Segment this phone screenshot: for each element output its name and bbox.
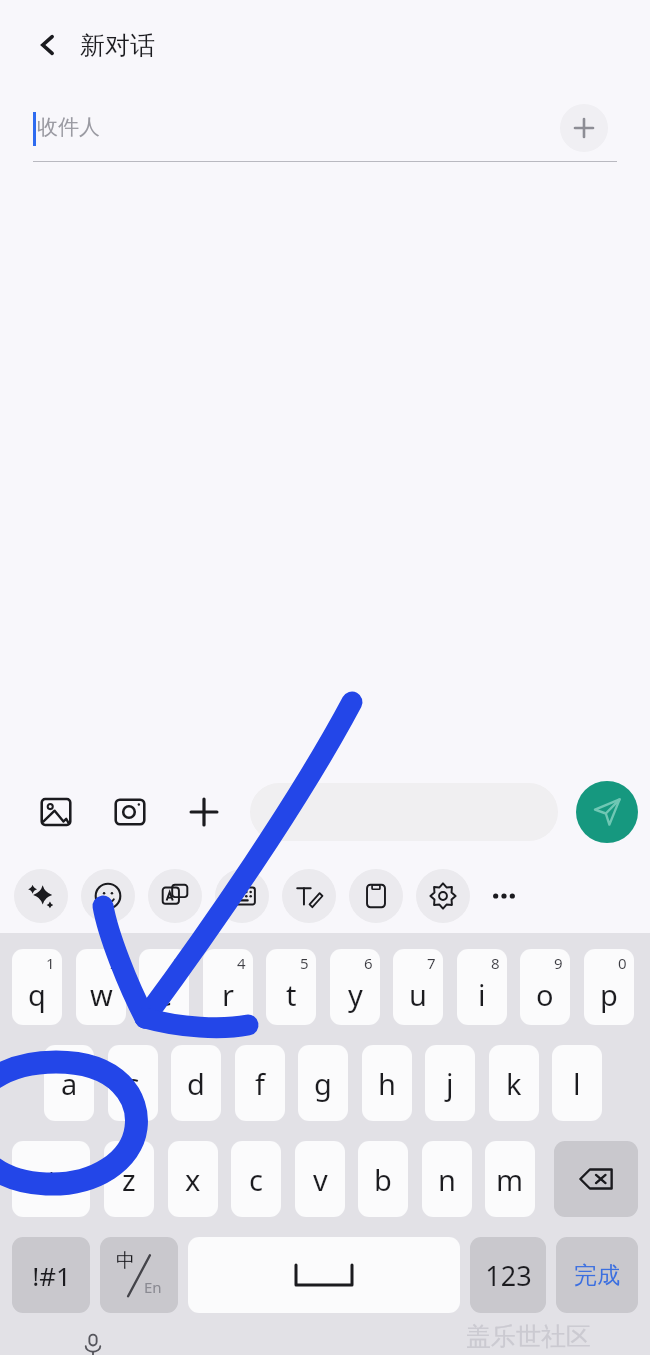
button[interactable]: Space: [188, 1237, 460, 1313]
staticText: 123: [485, 1257, 532, 1294]
button[interactable]: Attach image: [32, 788, 80, 836]
button[interactable]: a: [44, 1045, 94, 1121]
button[interactable]: Translate: [148, 869, 202, 923]
button[interactable]: f: [235, 1045, 285, 1121]
staticText: 中: [116, 1249, 135, 1273]
button[interactable]: m: [485, 1141, 535, 1217]
button[interactable]: Send: [576, 781, 638, 843]
staticText: 完成: [574, 1261, 620, 1290]
staticText: k: [506, 1064, 522, 1103]
staticText: e: [156, 975, 173, 1014]
button[interactable]: 7: [393, 949, 443, 1025]
staticText: z: [122, 1160, 136, 1199]
button[interactable]: 2: [76, 949, 126, 1025]
staticText: p: [600, 975, 618, 1014]
staticText: 1: [46, 953, 55, 973]
button[interactable]: Camera: [106, 788, 154, 836]
button[interactable]: j: [425, 1045, 475, 1121]
button[interactable]: 1: [12, 949, 62, 1025]
button[interactable]: More options: [180, 788, 228, 836]
staticText: 0: [618, 953, 627, 973]
staticText: En: [144, 1277, 162, 1297]
staticText: n: [438, 1160, 456, 1199]
staticText: 新对话: [80, 30, 155, 61]
button[interactable]: Clipboard: [349, 869, 403, 923]
button[interactable]: x: [168, 1141, 218, 1217]
button[interactable]: Emoji: [81, 869, 135, 923]
staticText: f: [255, 1064, 265, 1103]
button[interactable]: 完成: [556, 1237, 638, 1313]
button[interactable]: 4: [203, 949, 253, 1025]
button[interactable]: l: [552, 1045, 602, 1121]
staticText: 6: [364, 953, 373, 973]
staticText: c: [249, 1160, 263, 1199]
button[interactable]: b: [358, 1141, 408, 1217]
staticText: v: [313, 1160, 328, 1199]
staticText: s: [126, 1064, 140, 1103]
button[interactable]: 9: [520, 949, 570, 1025]
staticText: g: [314, 1064, 332, 1103]
button[interactable]: 0: [584, 949, 634, 1025]
staticText: 4: [237, 953, 246, 973]
button[interactable]: c: [231, 1141, 281, 1217]
staticText: 收件人: [37, 114, 100, 140]
button[interactable]: 8: [457, 949, 507, 1025]
button[interactable]: ': [12, 1141, 90, 1217]
button[interactable]: More: [480, 872, 528, 920]
button[interactable]: v: [295, 1141, 345, 1217]
button[interactable]: s: [108, 1045, 158, 1121]
button[interactable]: d: [171, 1045, 221, 1121]
button[interactable]: Add recipient: [560, 104, 608, 152]
staticText: 2: [110, 953, 119, 973]
button[interactable]: 5: [266, 949, 316, 1025]
button[interactable]: Voice input: [70, 1323, 116, 1355]
staticText: a: [61, 1064, 78, 1103]
button[interactable]: z: [104, 1141, 154, 1217]
staticText: x: [185, 1160, 201, 1199]
staticText: o: [536, 975, 554, 1014]
button[interactable]: !#1: [12, 1237, 90, 1313]
button[interactable]: h: [362, 1045, 412, 1121]
button[interactable]: Settings: [416, 869, 470, 923]
button[interactable]: AI suggest: [14, 869, 68, 923]
button[interactable]: Switch language: [100, 1237, 178, 1313]
button[interactable]: g: [298, 1045, 348, 1121]
staticText: q: [28, 975, 46, 1014]
button[interactable]: Back: [26, 23, 70, 67]
staticText: 9: [554, 953, 563, 973]
button[interactable]: Backspace: [554, 1141, 638, 1217]
staticText: b: [374, 1160, 392, 1199]
button[interactable]: Keyboard layout: [215, 869, 269, 923]
button[interactable]: 6: [330, 949, 380, 1025]
button[interactable]: n: [422, 1141, 472, 1217]
staticText: y: [348, 975, 363, 1014]
staticText: 7: [427, 953, 436, 973]
staticText: t: [286, 975, 297, 1014]
staticText: l: [573, 1064, 581, 1103]
button[interactable]: [250, 783, 558, 841]
staticText: u: [409, 975, 427, 1014]
staticText: 盖乐世社区: [466, 1321, 591, 1352]
staticText: ': [49, 1164, 54, 1194]
button[interactable]: k: [489, 1045, 539, 1121]
staticText: 8: [491, 953, 500, 973]
staticText: 5: [300, 953, 309, 973]
staticText: r: [222, 975, 234, 1014]
staticText: m: [496, 1160, 524, 1199]
staticText: w: [90, 975, 113, 1014]
staticText: j: [446, 1064, 454, 1103]
staticText: 3: [173, 953, 182, 973]
button[interactable]: Handwriting: [282, 869, 336, 923]
staticText: d: [187, 1064, 205, 1103]
staticText: h: [378, 1064, 396, 1103]
button[interactable]: 123: [470, 1237, 546, 1313]
button[interactable]: 3: [139, 949, 189, 1025]
staticText: i: [478, 975, 486, 1014]
staticText: !#1: [32, 1258, 71, 1293]
